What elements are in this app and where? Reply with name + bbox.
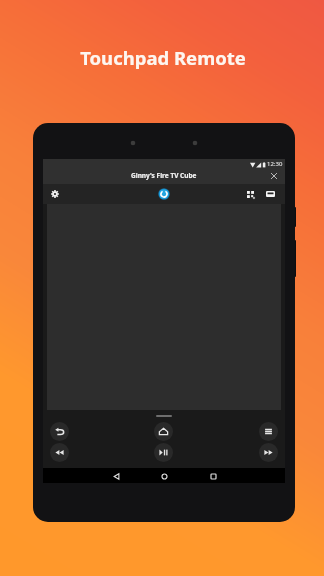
button[interactable]: Settings [48,187,62,201]
button[interactable]: Recents [207,470,219,482]
staticText: 12:30 [267,160,283,168]
button[interactable]: Home [158,470,170,482]
staticText: Touchpad Remote [1,45,324,70]
button[interactable]: Play Pause [154,443,173,462]
button[interactable]: Alexa voice [156,186,172,202]
button[interactable]: Rewind [50,443,69,462]
button[interactable]: Menu [259,422,278,441]
staticText: Ginny's Fire TV Cube [131,171,197,180]
button[interactable]: Close [268,170,280,182]
button[interactable]: Apps [243,187,257,201]
button[interactable]: Keyboard [263,187,277,201]
button[interactable]: Back [50,422,69,441]
button[interactable]: Back [110,470,122,482]
button[interactable]: Volume button [294,240,296,277]
button[interactable]: Home [154,422,173,441]
button[interactable]: Fast forward [259,443,278,462]
button[interactable]: Power button [294,207,296,227]
